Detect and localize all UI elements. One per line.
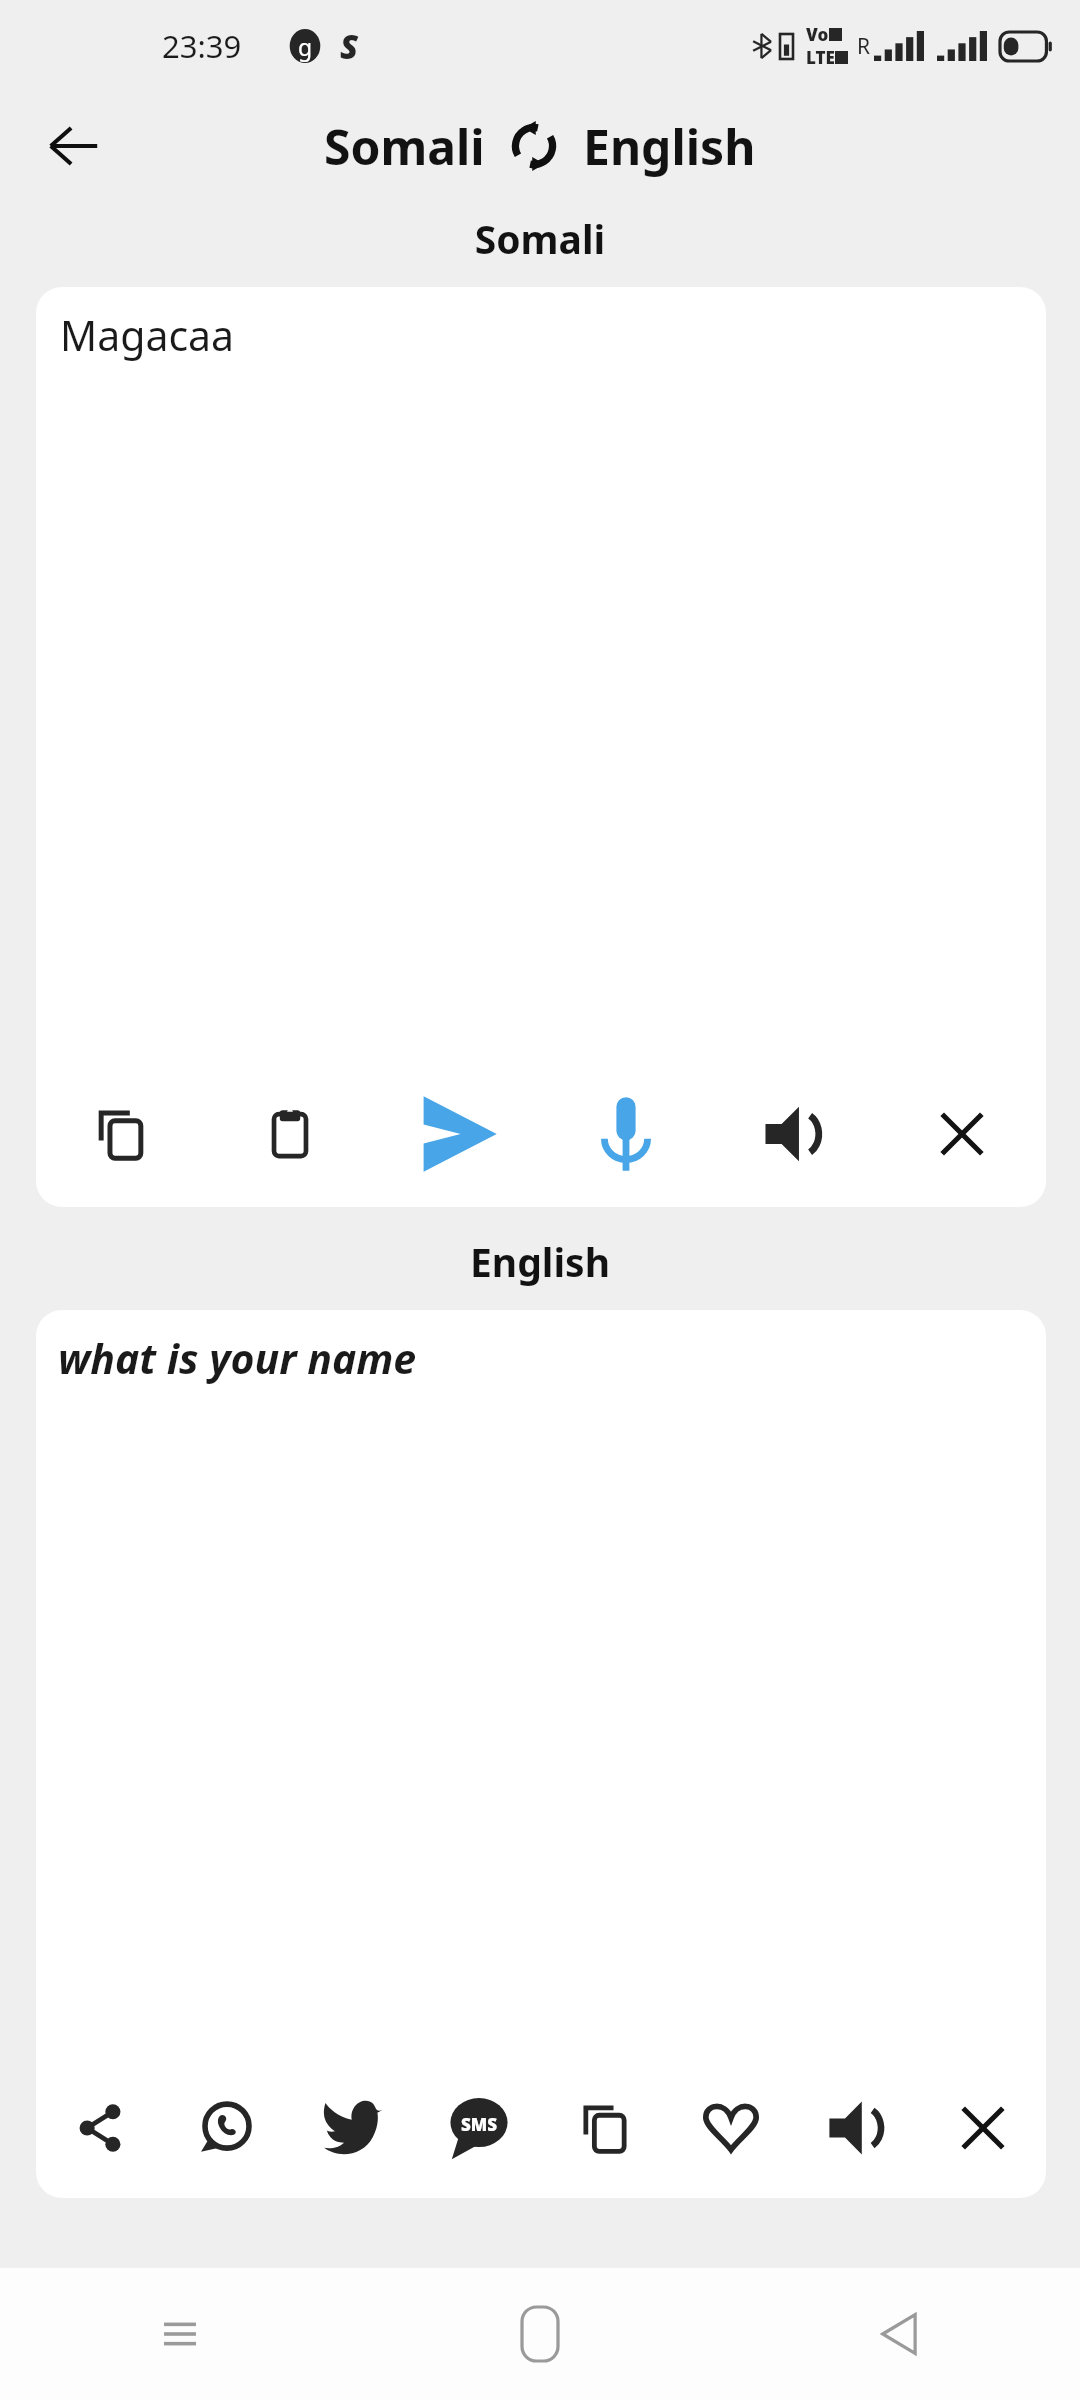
staticText: R [857, 32, 871, 61]
staticText: g [298, 31, 313, 62]
button[interactable]: Share on WhatsApp [163, 2058, 290, 2198]
button[interactable]: Clear [920, 2058, 1046, 2198]
button[interactable]: Magacaa [36, 287, 1046, 1207]
staticText: 23:39 [162, 25, 242, 67]
staticText: LTE [806, 46, 835, 69]
staticText: S [340, 24, 359, 69]
staticText: Vo [806, 23, 829, 46]
button[interactable]: Favourite [668, 2058, 794, 2198]
button[interactable]: Share on Twitter [290, 2058, 416, 2198]
staticText: SMS [461, 2113, 498, 2136]
button[interactable]: Send SMS [416, 2058, 542, 2198]
staticText: what is your name [58, 1330, 417, 1386]
button[interactable]: Voice input [542, 1061, 710, 1207]
staticText: Somali [0, 212, 1080, 265]
staticText: Magacaa [60, 307, 235, 363]
button[interactable]: Paste [205, 1061, 374, 1207]
button[interactable]: Back [850, 2284, 950, 2384]
button[interactable]: Translate [374, 1061, 542, 1207]
button[interactable]: what is your name [36, 1310, 1046, 2198]
button[interactable]: Clear [878, 1061, 1046, 1207]
button[interactable]: Speak [710, 1061, 878, 1207]
staticText: English [0, 1235, 1080, 1288]
button[interactable]: Swap languages [499, 111, 569, 181]
button[interactable]: English [583, 114, 756, 179]
button[interactable]: Back [36, 108, 112, 184]
button[interactable]: Home [490, 2284, 590, 2384]
button[interactable]: Somali [324, 114, 485, 179]
button[interactable]: Recent apps [130, 2284, 230, 2384]
button[interactable]: Copy [36, 1061, 205, 1207]
button[interactable]: Speak [794, 2058, 920, 2198]
button[interactable]: Share [36, 2058, 163, 2198]
button[interactable]: Copy [542, 2058, 668, 2198]
